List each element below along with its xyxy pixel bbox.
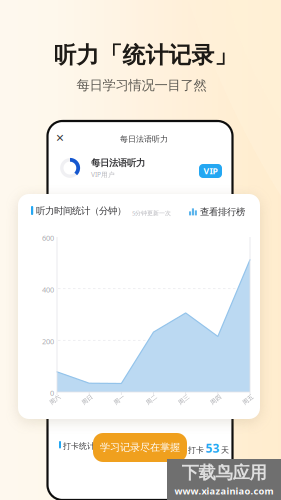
- staticText: 听力时间统计（分钟）: [36, 205, 126, 217]
- staticText: 周四: [210, 396, 222, 404]
- button[interactable]: 关闭: [51, 129, 69, 147]
- staticText: 53: [205, 440, 219, 456]
- staticText: 600: [42, 233, 54, 243]
- staticText: ✕: [55, 132, 64, 144]
- staticText: 周日: [81, 396, 93, 404]
- staticText: 周五: [242, 396, 254, 404]
- staticText: 打卡统计: [63, 441, 95, 451]
- staticText: 5分钟更新一次: [132, 209, 171, 217]
- staticText: 每日法语听力: [120, 134, 168, 144]
- staticText: 400: [42, 285, 54, 295]
- staticText: 听力「统计记录」: [53, 41, 237, 70]
- staticText: 每日法语听力: [91, 157, 145, 169]
- staticText: 打卡: [188, 445, 204, 455]
- staticText: 天: [221, 445, 229, 455]
- staticText: 下载鸟应用: [181, 462, 266, 483]
- staticText: 周三: [178, 396, 190, 404]
- staticText: 周一: [113, 396, 125, 404]
- staticText: 周六: [49, 396, 61, 404]
- staticText: VIP用户: [91, 170, 115, 179]
- staticText: 200: [42, 336, 54, 346]
- staticText: 每日学习情况一目了然: [76, 77, 206, 94]
- staticText: 周二: [145, 396, 157, 404]
- staticText: www.xiazainiao.com: [174, 485, 273, 497]
- staticText: VIP: [203, 165, 217, 177]
- button[interactable]: 查看排行榜: [189, 204, 245, 220]
- staticText: 查看排行榜: [200, 206, 245, 218]
- button[interactable]: 每日法语听力: [47, 150, 232, 186]
- staticText: 0: [50, 388, 54, 398]
- staticText: 学习记录尽在掌握: [100, 441, 180, 454]
